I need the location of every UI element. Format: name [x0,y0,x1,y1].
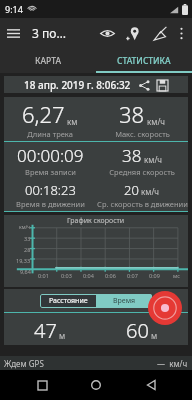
staticText: км [67,116,78,127]
button[interactable]: Share [137,78,151,92]
staticText: Ср. скорость в движении [97,199,188,209]
staticText: 00:00:09 [17,144,84,167]
staticText: 0:07 [127,272,138,279]
staticText: м [151,330,158,341]
button[interactable]: Back [138,372,164,398]
staticText: 18 апр. 2019 г. 8:06:32 [24,78,131,92]
staticText: 0:06 [105,272,116,279]
staticText: 0:03 [61,272,72,279]
staticText: Длина трека [27,129,73,139]
staticText: 0:01 [38,272,49,279]
staticText: 3 по… [32,25,66,41]
staticText: 20 [124,181,139,199]
staticText: км/ч [147,116,166,127]
button[interactable]: Record [148,291,182,325]
button[interactable]: Clear [146,20,172,46]
staticText: КАРТА [35,55,61,67]
staticText: 38 [122,144,142,167]
staticText: м [59,330,66,341]
staticText: СТАТИСТИКА [117,55,171,67]
button[interactable]: Menu [0,20,26,46]
staticText: 19,33 [16,257,31,264]
staticText: 9:14 [5,3,23,15]
button[interactable]: Save [155,78,169,92]
staticText: 6,27 [22,99,65,129]
staticText: — км/ч [157,358,188,369]
staticText: Время в движении [16,199,85,209]
staticText: 60 [126,317,149,343]
staticText: км/ч [141,186,160,197]
button[interactable]: More options [172,20,190,46]
button[interactable]: Время [96,294,152,308]
button[interactable]: СТАТИСТИКА [96,48,192,73]
button[interactable]: Add point [120,20,146,46]
staticText: Ждем GPS [4,358,44,369]
staticText: 00:18:23 [25,181,76,199]
staticText: Время записи [25,167,76,177]
staticText: Средняя скорость [109,167,175,177]
button[interactable]: Show track [94,20,120,46]
button[interactable]: КАРТА [0,48,96,73]
staticText: 9,64 [20,268,31,275]
staticText: 28 [24,246,31,253]
button[interactable]: Расстояние [40,294,96,308]
staticText: мс [173,272,180,279]
staticText: 33 [24,235,31,242]
staticText: 47 [34,317,57,343]
button[interactable]: Home [83,372,109,398]
staticText: Время [113,296,136,306]
staticText: км/ч [19,224,31,231]
staticText: 0:09 [149,272,160,279]
staticText: 0:04 [83,272,94,279]
button[interactable]: Recent apps [29,372,55,398]
staticText: Макс. скорость [115,129,170,139]
staticText: Расстояние [49,296,88,306]
staticText: График скорости [67,216,125,226]
staticText: 38 [119,99,145,129]
staticText: км/ч [144,154,163,165]
